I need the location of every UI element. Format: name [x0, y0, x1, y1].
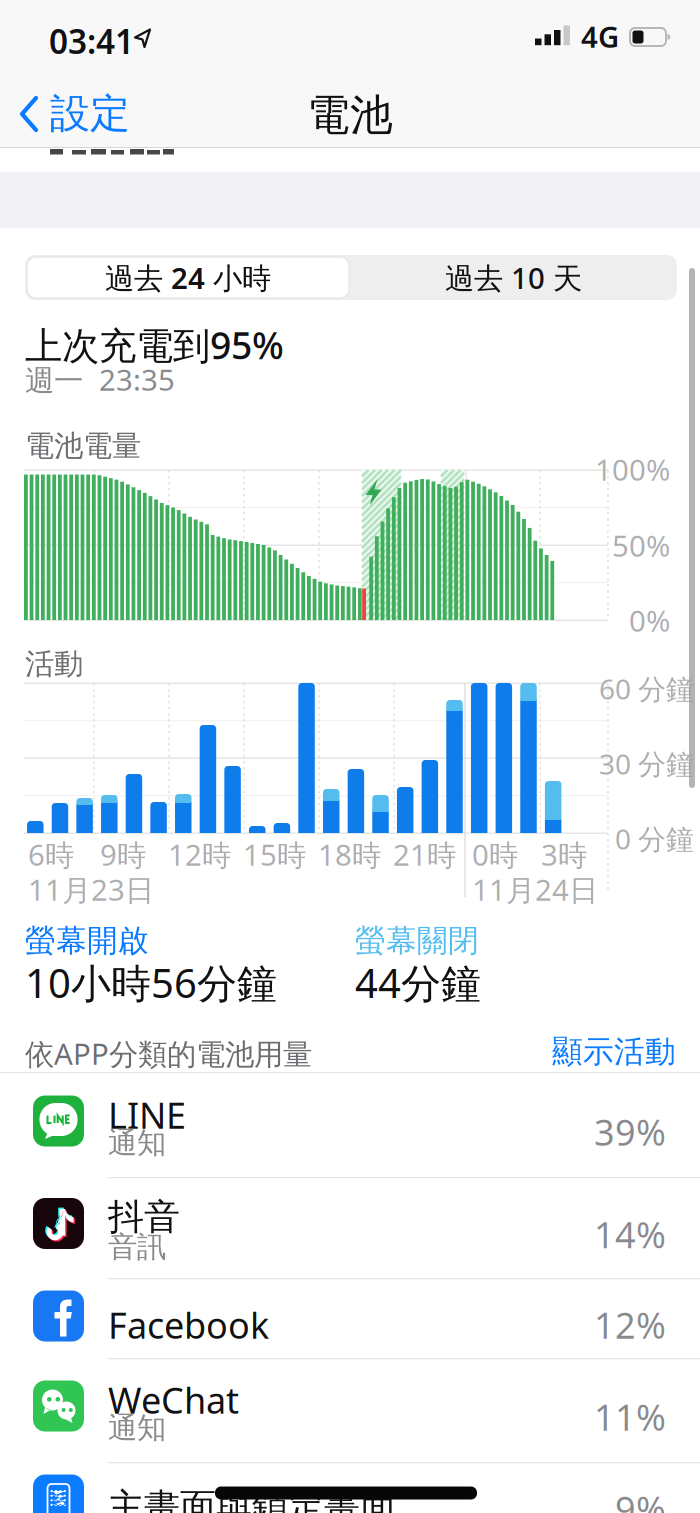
button[interactable]: 主畫面與鎖定畫面: [0, 1462, 700, 1513]
staticText: LINE: [108, 1091, 186, 1139]
button[interactable]: Facebook: [0, 1278, 700, 1358]
staticText: 上次充電到95%: [25, 320, 284, 370]
staticText: 50%: [612, 526, 670, 565]
staticText: Facebook: [108, 1301, 269, 1349]
button[interactable]: 過去 24 小時: [27, 257, 349, 298]
staticText: 21時: [393, 835, 456, 874]
staticText: 11%: [594, 1393, 666, 1441]
staticText: 39%: [594, 1108, 666, 1156]
staticText: 通知: [108, 1125, 166, 1161]
button[interactable]: LINE: [0, 1073, 700, 1177]
staticText: 電池: [307, 89, 393, 141]
staticText: 螢幕關閉: [355, 922, 479, 960]
staticText: 螢幕開啟: [25, 922, 149, 960]
staticText: 12時: [168, 835, 231, 874]
staticText: 15時: [243, 835, 306, 874]
button[interactable]: 過去 10 天: [350, 255, 677, 300]
button[interactable]: 抖音: [0, 1177, 700, 1278]
staticText: 0%: [629, 601, 670, 640]
staticText: 電池電量: [25, 428, 141, 464]
staticText: 9%: [615, 1485, 666, 1513]
staticText: 活動: [25, 646, 83, 682]
staticText: 3時: [541, 835, 587, 874]
staticText: 音訊: [108, 1229, 166, 1265]
staticText: 顯示活動: [552, 1033, 676, 1071]
staticText: 依APP分類的電池用量: [25, 1034, 312, 1073]
staticText: 0 分鐘: [615, 820, 694, 857]
staticText: 03:41: [49, 19, 134, 63]
staticText: 週一 23:35: [25, 360, 175, 399]
staticText: 12%: [594, 1301, 666, 1349]
staticText: 100%: [595, 450, 670, 489]
staticText: 抖音: [108, 1195, 180, 1239]
button[interactable]: 顯示活動: [0, 0, 200, 38]
staticText: 10小時56分鐘: [25, 956, 277, 1009]
staticText: 14%: [594, 1210, 666, 1258]
staticText: 44分鐘: [355, 956, 481, 1009]
staticText: 9時: [100, 835, 146, 874]
staticText: 6時: [28, 835, 74, 874]
staticText: 設定: [50, 89, 130, 138]
staticText: 18時: [318, 835, 381, 874]
staticText: 0時: [472, 835, 518, 874]
staticText: 60 分鐘: [599, 670, 694, 707]
staticText: 11月24日: [472, 870, 598, 909]
staticText: 11月23日: [28, 870, 154, 909]
staticText: 通知: [108, 1410, 166, 1446]
staticText: 過去 24 小時: [105, 258, 271, 297]
staticText: 30 分鐘: [599, 745, 694, 782]
staticText: 4G: [581, 17, 619, 56]
button[interactable]: 設定: [0, 0, 130, 147]
staticText: WeChat: [108, 1376, 239, 1424]
staticText: 主畫面與鎖定畫面: [108, 1485, 396, 1513]
button[interactable]: WeChat: [0, 1358, 700, 1462]
staticText: 過去 10 天: [445, 258, 582, 297]
